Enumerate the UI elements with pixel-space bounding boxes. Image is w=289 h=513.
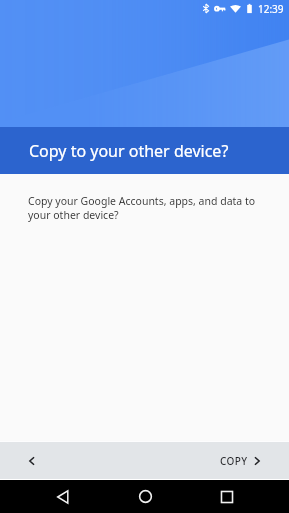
button[interactable]: Back — [39, 480, 87, 513]
button[interactable]: Home — [121, 480, 169, 513]
staticText: Copy to your other device? — [29, 140, 229, 162]
button[interactable]: COPY — [206, 442, 289, 479]
staticText: 12:39 — [258, 2, 284, 16]
staticText: Copy your Google Accounts, apps, and dat… — [28, 194, 265, 222]
button[interactable]: Recent apps — [203, 480, 251, 513]
button[interactable]: Back — [0, 442, 64, 479]
staticText: COPY — [220, 454, 248, 468]
